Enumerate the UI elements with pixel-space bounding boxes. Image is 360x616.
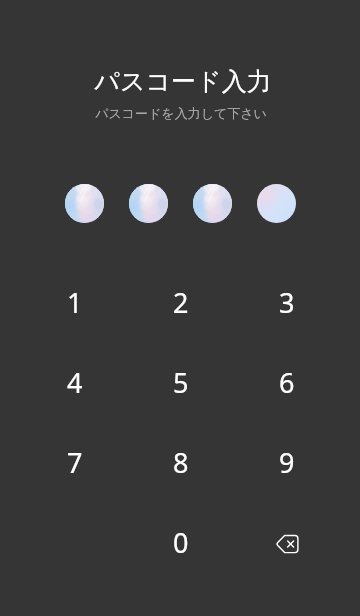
button[interactable]: 0 (128, 502, 234, 582)
staticText: 3 (279, 284, 295, 321)
button[interactable]: 2 (128, 262, 234, 342)
button[interactable]: 3 (234, 262, 340, 342)
button[interactable]: 7 (22, 422, 128, 502)
staticText: 4 (67, 364, 83, 401)
button[interactable]: 8 (128, 422, 234, 502)
staticText: パスコード入力 (94, 66, 272, 97)
staticText: 0 (173, 524, 189, 561)
button[interactable]: 1 (22, 262, 128, 342)
staticText: 8 (173, 444, 189, 481)
button[interactable]: 5 (128, 342, 234, 422)
staticText: 6 (279, 364, 295, 401)
button[interactable]: 9 (234, 422, 340, 502)
staticText: 5 (173, 364, 189, 401)
staticText: 7 (67, 444, 83, 481)
staticText: 2 (173, 284, 189, 321)
button[interactable]: 4 (22, 342, 128, 422)
staticText: 1 (67, 284, 83, 321)
button[interactable]: Delete (234, 502, 340, 582)
button[interactable]: 6 (234, 342, 340, 422)
staticText: 9 (279, 444, 295, 481)
staticText: パスコードを入力して下さい (95, 105, 267, 121)
